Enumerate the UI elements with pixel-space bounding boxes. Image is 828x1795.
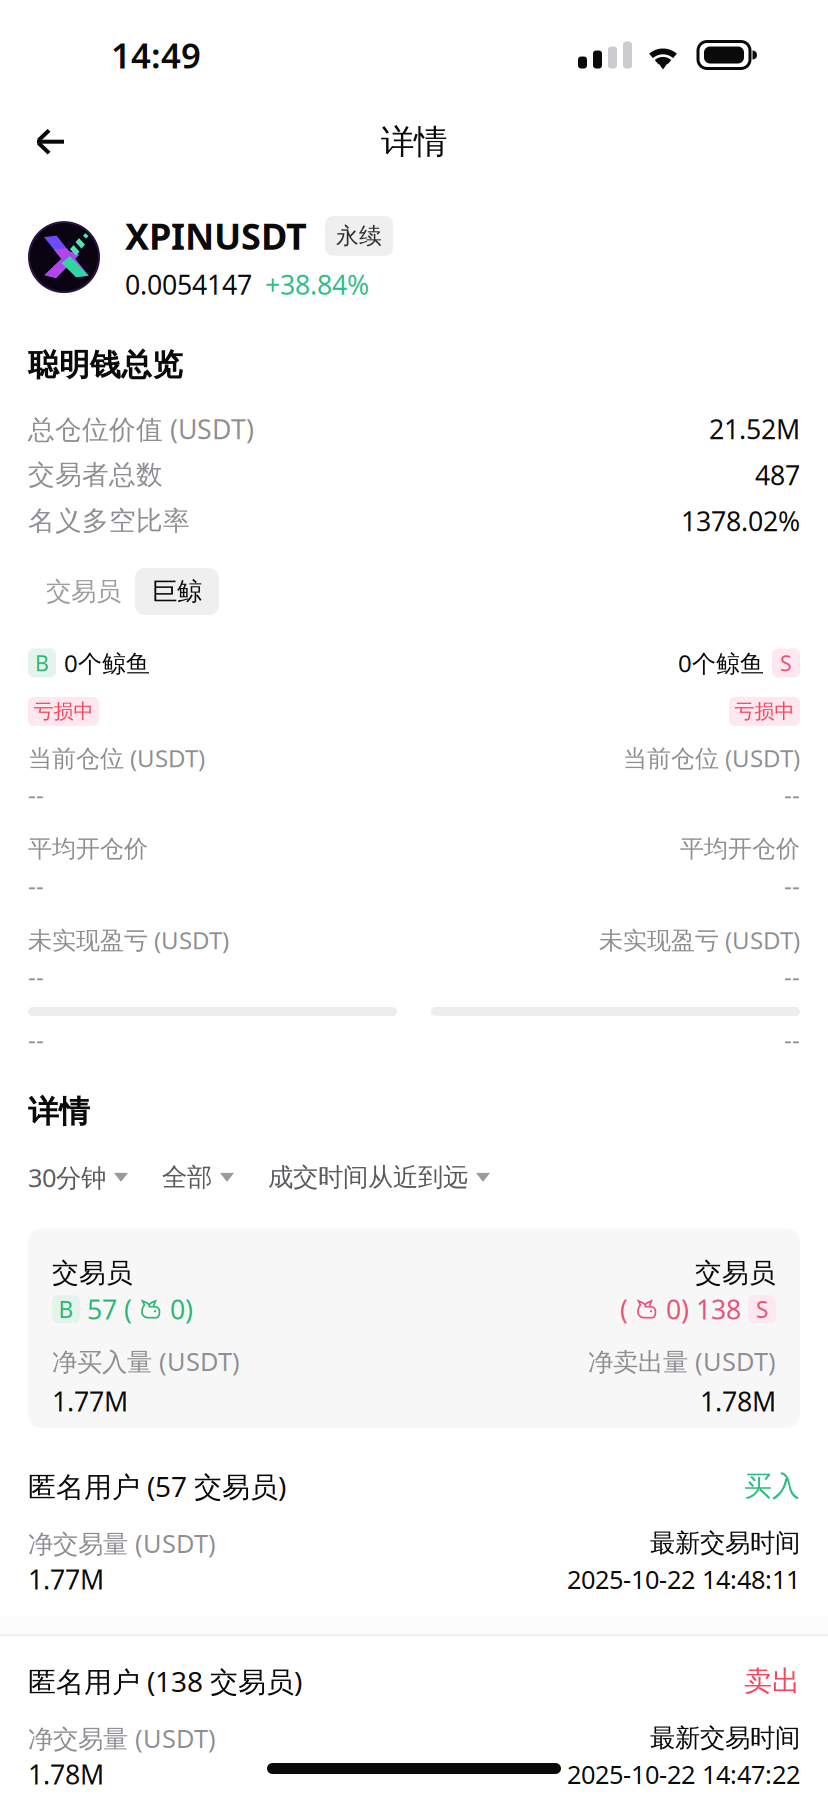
staticText: 平均开仓价 [680,834,800,864]
staticText: 1.77M [28,1561,104,1597]
staticText: 成交时间从近到远 [268,1162,468,1193]
staticText: 1.78M [700,1383,776,1419]
staticText: 2025-10-22 14:48:11 [567,1562,800,1596]
staticText: 交易员 [46,576,121,607]
staticText: -- [784,778,800,810]
button[interactable]: 匿名用户 (57 交易员) [0,1441,828,1616]
staticText: 匿名用户 (138 交易员) [28,1663,302,1700]
staticText: 名义多空比率 [28,504,190,537]
staticText: XPINUSDT [125,212,307,260]
staticText: 0个鲸鱼 [678,647,764,679]
staticText: 巨鲸 [152,576,202,607]
staticText: 全部 [162,1162,212,1193]
staticText: 净交易量 (USDT) [28,1526,216,1560]
staticText: 交易员 [52,1257,133,1290]
staticText: S [780,649,792,677]
staticText: 交易者总数 [28,458,163,491]
staticText: 57 ( [87,1291,132,1327]
staticText: 487 [755,457,800,493]
staticText: 聪明钱总览 [28,346,183,384]
staticText: -- [28,869,44,901]
staticText: 亏损中 [33,699,93,724]
staticText: 详情 [28,1093,90,1131]
staticText: 30分钟 [28,1160,106,1194]
staticText: -- [28,960,44,992]
staticText: 当前仓位 (USDT) [28,742,205,774]
staticText: 21.52M [709,411,800,447]
button[interactable]: 巨鲸 [135,568,219,615]
staticText: 总仓位价值 (USDT) [28,411,254,447]
staticText: 详情 [381,121,447,162]
button[interactable]: Back [0,100,96,184]
staticText: +38.84% [265,267,369,302]
button[interactable]: 交易员 [28,568,131,615]
staticText: 1.78M [28,1756,104,1792]
staticText: -- [784,960,800,992]
staticText: 亏损中 [734,699,794,724]
button[interactable]: 全部 [162,1156,234,1199]
staticText: 2025-10-22 14:47:22 [567,1757,800,1791]
staticText: 净交易量 (USDT) [28,1721,216,1755]
staticText: 最新交易时间 [650,1528,800,1559]
staticText: 净买入量 (USDT) [52,1344,240,1378]
staticText: -- [784,869,800,901]
staticText: 0) [170,1291,193,1327]
staticText: 平均开仓价 [28,834,148,864]
staticText: 14:49 [111,32,201,78]
staticText: ( [620,1291,628,1327]
staticText: 匿名用户 (57 交易员) [28,1468,286,1505]
staticText: 当前仓位 (USDT) [623,742,800,774]
staticText: 永续 [336,222,382,250]
button[interactable]: 30分钟 [28,1154,128,1200]
staticText: 0.0054147 [125,267,252,302]
staticText: 卖出 [744,1664,800,1698]
staticText: -- [28,1023,44,1055]
staticText: 买入 [744,1469,800,1503]
button[interactable]: 成交时间从近到远 [268,1156,490,1199]
staticText: -- [28,778,44,810]
staticText: 未实现盈亏 (USDT) [28,924,229,956]
staticText: 交易员 [695,1257,776,1290]
staticText: B [35,649,49,677]
staticText: -- [784,1023,800,1055]
button[interactable]: 匿名用户 (138 交易员) [0,1636,828,1795]
staticText: S [756,1294,768,1324]
staticText: 0) 138 [666,1291,741,1327]
staticText: 1.77M [52,1383,128,1419]
staticText: 1378.02% [681,503,800,539]
staticText: B [58,1294,73,1324]
staticText: 净卖出量 (USDT) [588,1344,776,1378]
staticText: 最新交易时间 [650,1723,800,1754]
staticText: 0个鲸鱼 [64,647,150,679]
staticText: 未实现盈亏 (USDT) [599,924,800,956]
